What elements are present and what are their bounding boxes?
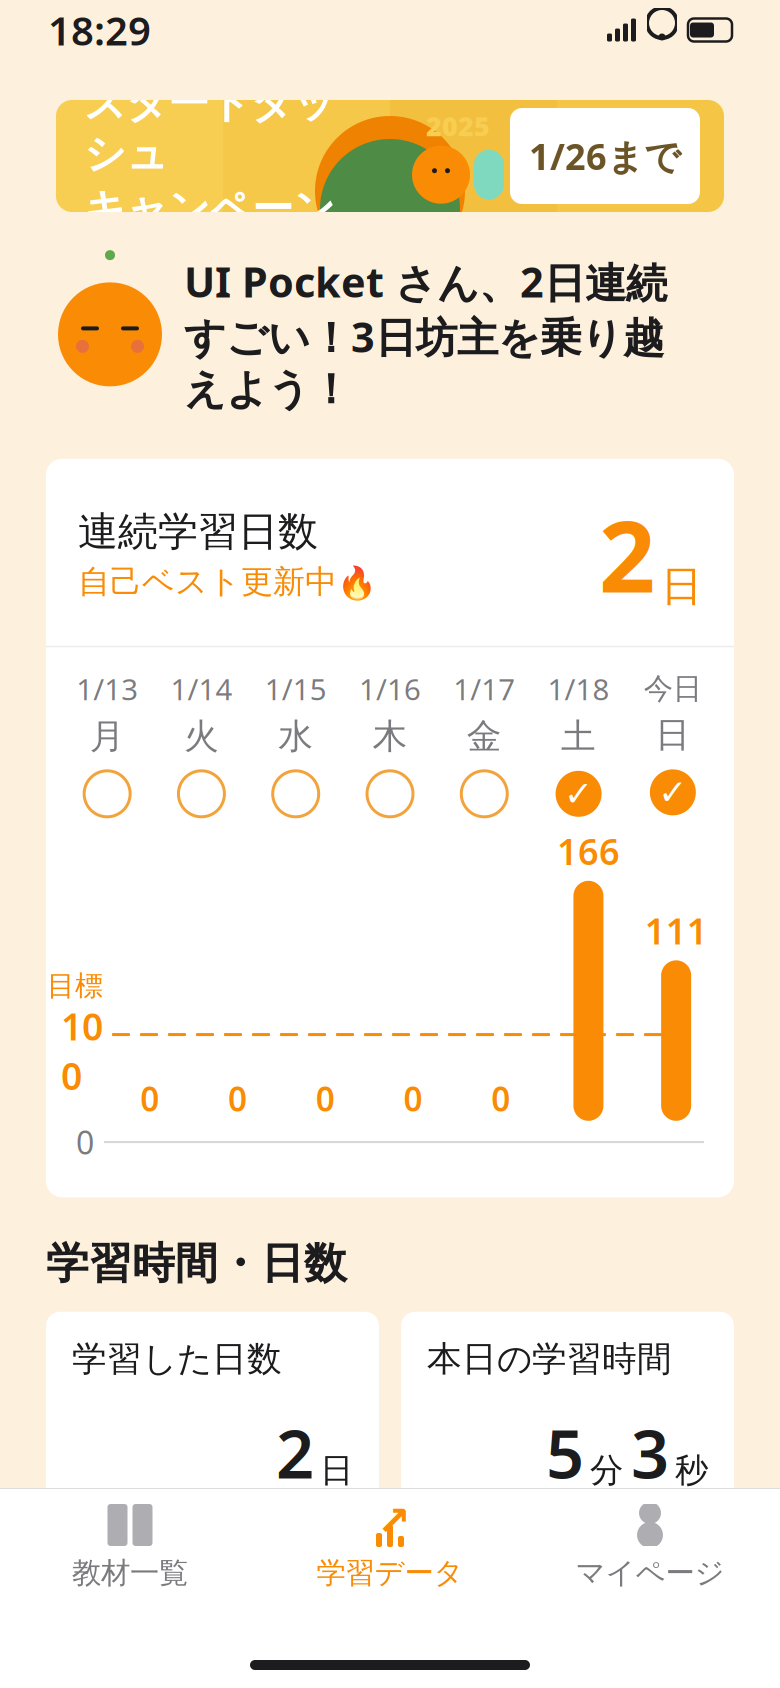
staticText: 111 <box>645 906 708 954</box>
staticText: 18:29 <box>48 3 151 56</box>
staticText: 2 <box>276 1408 314 1497</box>
staticText: 2025 <box>426 108 490 144</box>
staticText: 本日の学習時間 <box>427 1338 672 1380</box>
staticText: 1/16 <box>359 669 421 708</box>
staticText: 教材一覧 <box>72 1555 188 1591</box>
staticText: 0 <box>316 1077 335 1121</box>
staticText: 0 <box>228 1077 247 1121</box>
staticText: 土 <box>561 715 596 758</box>
staticText: ✓ <box>564 774 593 813</box>
staticText: 1/18 <box>548 669 610 708</box>
staticText: 166 <box>557 827 620 875</box>
staticText: 2 <box>599 489 655 620</box>
staticText: 5 <box>546 1408 584 1497</box>
staticText: 日 <box>661 561 702 612</box>
staticText: ↗ <box>377 1498 411 1544</box>
staticText: 学習時間・日数 <box>46 1237 347 1290</box>
staticText: スタートダッシュ <box>84 78 335 179</box>
staticText: 自己ベスト更新中🔥 <box>78 562 377 601</box>
staticText: 3 <box>631 1408 669 1497</box>
button[interactable]: 教材一覧 <box>0 1489 260 1601</box>
staticText: 1/13 <box>76 669 138 708</box>
staticText: 1/14 <box>170 669 232 708</box>
staticText: 0 <box>140 1077 159 1121</box>
staticText: 金 <box>467 715 502 758</box>
staticText: ✓ <box>658 773 687 812</box>
staticText: 日 <box>655 714 690 756</box>
button[interactable]: ↗ <box>260 1489 520 1601</box>
staticText: 0 <box>403 1077 422 1121</box>
staticText: キャンペーン <box>84 183 335 234</box>
staticText: 火 <box>184 715 219 758</box>
staticText: 0 <box>76 1121 94 1163</box>
button[interactable]: スタートダッシュ <box>56 100 724 212</box>
staticText: 100 <box>61 1001 103 1100</box>
staticText: 1/15 <box>265 669 327 708</box>
staticText: 目標 <box>47 969 103 1003</box>
staticText: 学習した日数 <box>72 1338 282 1380</box>
staticText: 0 <box>491 1077 510 1121</box>
staticText: 分 <box>590 1450 623 1491</box>
staticText: 1/17 <box>453 669 515 708</box>
staticText: マイページ <box>575 1555 724 1591</box>
staticText: 今日 <box>644 671 702 707</box>
staticText: 日 <box>320 1450 353 1491</box>
staticText: 木 <box>372 715 407 758</box>
staticText: 水 <box>278 715 313 758</box>
staticText: 学習データ <box>316 1555 463 1591</box>
staticText: 月 <box>90 715 125 758</box>
staticText: UI Pocket さん、2日連続すごい！3日坊主を乗り越えよう！ <box>184 254 667 415</box>
staticText: 合計学習時間 <box>72 1569 282 1611</box>
staticText: 秒 <box>675 1450 708 1491</box>
button[interactable]: マイページ <box>520 1489 780 1601</box>
staticText: 1/26まで <box>529 132 681 180</box>
staticText: 連続学習日数 <box>78 507 318 556</box>
